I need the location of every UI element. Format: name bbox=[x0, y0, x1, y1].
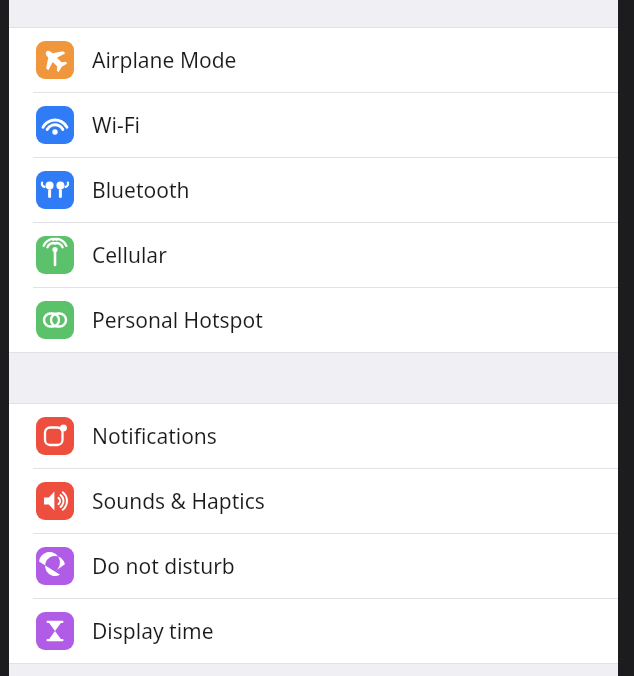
staticText: Cellular bbox=[92, 241, 167, 270]
button[interactable]: Personal Hotspot bbox=[9, 288, 618, 352]
staticText: Personal Hotspot bbox=[92, 306, 263, 335]
button[interactable]: Do not disturb bbox=[9, 534, 618, 598]
staticText: Wi-Fi bbox=[92, 111, 141, 140]
button[interactable]: Notifications bbox=[9, 404, 618, 468]
button[interactable]: Display time bbox=[9, 599, 618, 663]
staticText: Display time bbox=[92, 617, 214, 646]
button[interactable]: Sounds & Haptics bbox=[9, 469, 618, 533]
staticText: Bluetooth bbox=[92, 176, 190, 205]
staticText: Do not disturb bbox=[92, 552, 235, 581]
button[interactable]: Cellular bbox=[9, 223, 618, 287]
staticText: Airplane Mode bbox=[92, 46, 237, 75]
button[interactable]: Bluetooth bbox=[9, 158, 618, 222]
button[interactable]: Airplane Mode bbox=[9, 28, 618, 92]
staticText: Sounds & Haptics bbox=[92, 487, 265, 516]
button[interactable]: Wi-Fi bbox=[9, 93, 618, 157]
staticText: Notifications bbox=[92, 422, 217, 451]
